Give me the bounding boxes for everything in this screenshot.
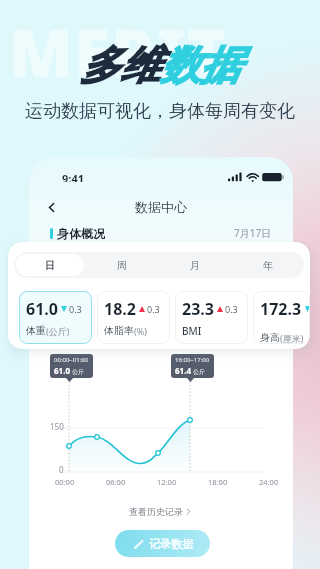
button[interactable]: 172.3 bbox=[253, 291, 310, 344]
staticText: 月 bbox=[190, 259, 200, 272]
staticText: 0 bbox=[59, 464, 64, 475]
staticText: 18.2 bbox=[104, 298, 136, 320]
staticText: MERIT bbox=[9, 6, 227, 96]
staticText: 00:00~01:00 bbox=[54, 356, 89, 364]
staticText: 身体概况 bbox=[57, 226, 105, 240]
staticText: 数据中心 bbox=[135, 199, 187, 215]
button[interactable]: 日 bbox=[16, 254, 84, 276]
staticText: (厘米) bbox=[280, 332, 304, 344]
staticText: 9:41 bbox=[62, 171, 84, 182]
staticText: 0.3 bbox=[69, 303, 82, 315]
button[interactable]: 周 bbox=[88, 254, 156, 276]
staticText: 06:00 bbox=[106, 477, 126, 487]
button[interactable]: 23.3 bbox=[175, 291, 248, 344]
button[interactable]: 61.0 bbox=[19, 291, 92, 344]
staticText: 体脂率 bbox=[104, 324, 134, 337]
button[interactable]: 查看历史记录 bbox=[123, 503, 197, 520]
staticText: 61.0 bbox=[54, 365, 70, 376]
staticText: 61.4 bbox=[175, 365, 191, 376]
staticText: 18:00 bbox=[208, 477, 228, 487]
staticText: 23.3 bbox=[182, 298, 214, 320]
staticText: (公斤) bbox=[46, 325, 70, 337]
staticText: 日 bbox=[45, 259, 55, 272]
staticText: 172.3 bbox=[260, 298, 302, 320]
staticText: 61.0 bbox=[26, 298, 58, 320]
button[interactable]: 记录数据 bbox=[115, 530, 210, 557]
staticText: 公斤 bbox=[72, 368, 84, 376]
staticText: 年 bbox=[263, 259, 273, 272]
staticText: 公斤 bbox=[193, 368, 205, 376]
button[interactable]: 月 bbox=[160, 254, 229, 276]
button[interactable]: Back bbox=[42, 198, 60, 216]
staticText: BMI bbox=[182, 324, 202, 338]
staticText: 150 bbox=[50, 421, 64, 432]
staticText: 12:00 bbox=[157, 477, 177, 487]
staticText: 运动数据可视化，身体每周有变化 bbox=[0, 100, 320, 123]
staticText: 数据 bbox=[160, 40, 240, 90]
staticText: 身高 bbox=[260, 331, 280, 344]
staticText: 体重 bbox=[26, 324, 46, 337]
staticText: 00:00 bbox=[55, 477, 75, 487]
staticText: 记录数据 bbox=[149, 537, 193, 551]
button[interactable]: 18.2 bbox=[97, 291, 170, 344]
staticText: (%) bbox=[134, 325, 147, 337]
staticText: 查看历史记录 bbox=[129, 506, 183, 517]
staticText: 多维 bbox=[80, 40, 160, 90]
staticText: 16:00~17:00 bbox=[175, 356, 210, 364]
staticText: 0.3 bbox=[147, 303, 160, 315]
staticText: 周 bbox=[117, 259, 127, 272]
staticText: 24:00 bbox=[259, 477, 279, 487]
staticText: 7月17日 bbox=[234, 226, 272, 240]
staticText: 0.3 bbox=[225, 303, 238, 315]
button[interactable]: 年 bbox=[233, 254, 302, 276]
